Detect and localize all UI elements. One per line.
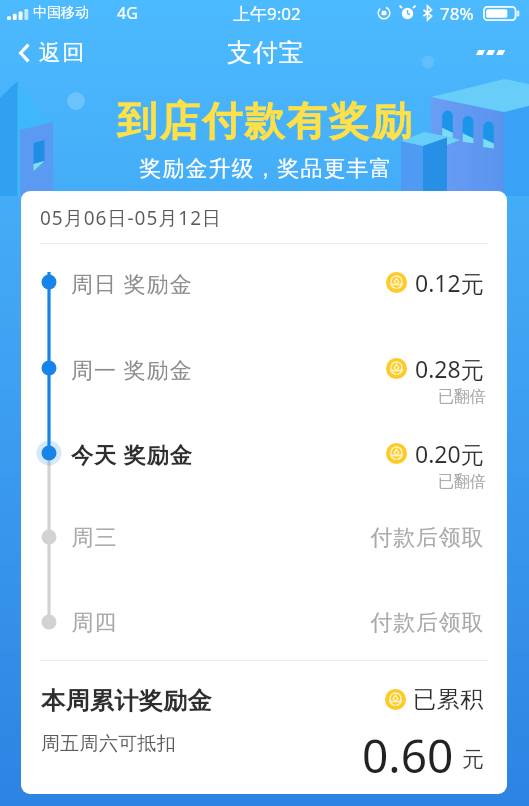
staticText: 已累积	[413, 685, 484, 714]
staticText: 已翻倍	[438, 472, 486, 492]
staticText: 付款后领取	[370, 609, 484, 637]
staticText: 已翻倍	[438, 387, 486, 407]
button[interactable]: 今天 奖励金	[21, 411, 507, 496]
staticText: 今天 奖励金	[71, 439, 193, 469]
staticText: 付款后领取	[370, 524, 484, 552]
button[interactable]: 返回	[0, 32, 101, 76]
button[interactable]: More options	[449, 30, 529, 68]
staticText: 4G	[117, 2, 138, 24]
staticText: 本周累计奖励金	[41, 686, 212, 716]
staticText: 周一 奖励金	[71, 354, 193, 384]
button[interactable]: 05月06日-05月12日	[21, 191, 507, 244]
staticText: 中国移动	[33, 4, 89, 22]
staticText: 78%	[440, 2, 474, 25]
staticText: 到店付款有奖励	[117, 96, 414, 146]
staticText: 返回	[38, 39, 85, 67]
staticText: 支付宝	[227, 37, 305, 68]
button[interactable]: 周三	[21, 495, 507, 580]
button[interactable]: 周四	[21, 580, 507, 665]
staticText: 奖励金升级，奖品更丰富	[139, 155, 392, 183]
staticText: 0.20元	[415, 438, 484, 469]
button[interactable]: 周一 奖励金	[21, 326, 507, 411]
staticText: 上午9:02	[233, 2, 301, 25]
staticText: 元	[462, 746, 484, 774]
staticText: 周五周六可抵扣	[41, 732, 177, 756]
staticText: 周日 奖励金	[71, 268, 193, 298]
staticText: 周三	[71, 524, 117, 552]
staticText: 0.12元	[415, 267, 484, 298]
button[interactable]: 周日 奖励金	[21, 240, 507, 325]
staticText: 周四	[71, 609, 117, 637]
staticText: 0.60	[362, 724, 454, 787]
staticText: 0.28元	[415, 353, 484, 384]
staticText: 05月06日-05月12日	[40, 205, 223, 231]
